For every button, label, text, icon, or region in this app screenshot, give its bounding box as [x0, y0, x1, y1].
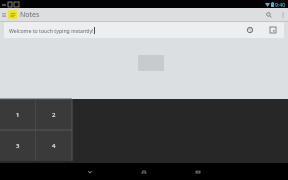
button[interactable]: Welcome to touch typing instantly! — [4, 22, 284, 38]
button[interactable]: 3 — [0, 130, 36, 161]
staticText: 3 — [16, 142, 20, 150]
button[interactable]: Insert emoji — [243, 23, 257, 37]
button[interactable]: Recent apps — [181, 163, 215, 180]
button[interactable]: 1 — [0, 99, 36, 130]
staticText: 1 — [16, 111, 20, 119]
staticText: 2 — [52, 111, 56, 119]
button[interactable]: Open navigation drawer — [0, 8, 8, 21]
button[interactable]: Home — [127, 163, 161, 180]
staticText: 4 — [52, 142, 56, 150]
button[interactable]: Back — [73, 163, 107, 180]
button[interactable]: Search — [260, 8, 277, 21]
staticText: 9:40 — [275, 1, 286, 8]
button[interactable]: 4 — [36, 130, 72, 161]
button[interactable]: Attach picture — [266, 23, 280, 37]
staticText: Notes — [20, 10, 40, 20]
button[interactable]: More options — [277, 8, 288, 21]
button[interactable]: 2 — [36, 99, 72, 130]
staticText: Welcome to touch typing instantly! — [9, 27, 94, 34]
